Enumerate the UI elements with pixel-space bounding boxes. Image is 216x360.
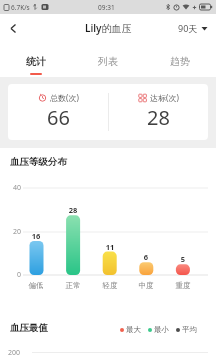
staticText: 总数(次) [50,92,79,103]
button[interactable]: 达标(次) [108,84,208,140]
staticText: 6.7K/s [11,3,30,12]
staticText: 28 [61,205,85,215]
staticText: 90天 [178,22,198,34]
staticText: 正常 [59,281,87,290]
staticText: 09:31 [98,3,115,12]
staticText: 偏低 [22,281,50,290]
staticText: 16 [24,231,48,241]
staticText: 最大 [126,325,141,334]
staticText: 列表 [98,55,118,68]
button[interactable]: 列表 [72,42,144,77]
staticText: 中度 [132,281,160,290]
staticText: 血压等级分布 [10,156,67,168]
staticText: 200 [8,348,21,358]
staticText: 平均 [182,325,197,334]
staticText: 28 [147,104,170,131]
staticText: 达标(次) [150,92,179,103]
staticText: 20 [4,227,21,237]
staticText: 轻度 [96,281,124,290]
staticText: 重度 [169,281,197,290]
button[interactable]: 趋势 [144,42,216,77]
staticText: 趋势 [170,55,190,68]
staticText: 11 [98,242,122,252]
staticText: 血压最值 [10,322,48,334]
staticText: 5 [171,254,195,264]
button[interactable]: 统计 [0,42,72,77]
staticText: 66 [47,104,70,131]
staticText: 40 [4,183,21,193]
staticText: Lily的血压 [85,21,132,35]
staticText: 0 [4,270,21,280]
button[interactable]: 总数(次) [8,84,108,140]
staticText: 统计 [26,55,46,68]
button[interactable] [0,15,26,41]
button[interactable]: 90天 [178,22,208,34]
staticText: 6 [134,252,158,262]
staticText: 最小 [154,325,169,334]
